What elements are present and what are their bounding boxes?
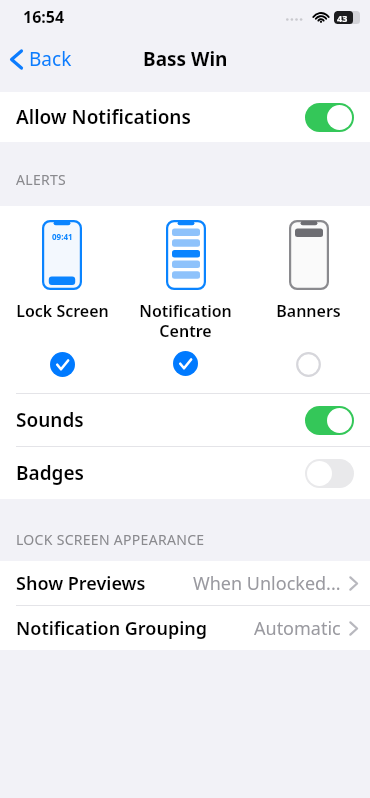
staticText: When Unlocked...	[193, 571, 341, 596]
button[interactable]: Banners	[247, 220, 370, 377]
button[interactable]: Notification Grouping	[0, 606, 370, 650]
staticText: Bass Win	[143, 46, 228, 72]
staticText: Banners	[276, 300, 341, 322]
staticText: Back	[29, 46, 72, 72]
button[interactable]: Notification Centre	[124, 220, 247, 376]
staticText: Automatic	[254, 616, 341, 641]
button[interactable]: Toggle off	[305, 459, 354, 488]
button[interactable]: Allow Notifications	[0, 92, 370, 142]
staticText: Notification Grouping	[16, 616, 208, 641]
staticText: 16:54	[23, 6, 65, 28]
button[interactable]: Badges	[0, 447, 370, 499]
button[interactable]: Sounds	[0, 394, 370, 446]
staticText: LOCK SCREEN APPEARANCE	[16, 530, 205, 549]
staticText: 43	[337, 12, 348, 24]
staticText: Show Previews	[16, 571, 146, 596]
staticText: 09:41	[52, 231, 73, 242]
staticText: ALERTS	[16, 170, 67, 189]
staticText: Allow Notifications	[16, 104, 191, 130]
staticText: Badges	[16, 460, 84, 486]
button[interactable]: 09:41	[0, 220, 124, 377]
button[interactable]: Back	[0, 40, 82, 78]
staticText: Lock Screen	[16, 300, 109, 322]
button[interactable]: Toggle on	[305, 103, 354, 132]
button[interactable]: Toggle on	[305, 406, 354, 435]
staticText: Sounds	[16, 407, 84, 433]
staticText: Notification Centre	[139, 300, 232, 341]
button[interactable]: Show Previews	[0, 561, 370, 605]
